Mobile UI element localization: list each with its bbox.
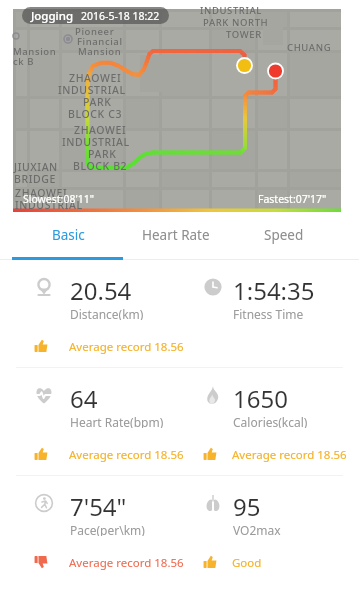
staticText: ZHAOWEI <box>15 186 68 200</box>
staticText: Mansion <box>78 45 122 58</box>
staticText: PARK NORTH <box>203 16 269 29</box>
staticText: Heart Rate <box>142 226 210 244</box>
staticText: ZHAOWEI <box>69 71 122 85</box>
staticText: BLOCK B2 <box>73 159 128 173</box>
staticText: 1:54:35 <box>233 274 315 307</box>
staticText: Distance(km) <box>70 306 144 320</box>
button[interactable]: Speed <box>230 212 338 260</box>
staticText: INDUSTRIAL <box>62 135 130 149</box>
staticText: ZHAOWEI <box>74 123 127 137</box>
staticText: BRIDGE <box>14 172 56 186</box>
staticText: Calories(kcal) <box>233 414 308 428</box>
staticText: VO2max <box>233 522 281 536</box>
staticText: Average record 18.56 <box>69 339 184 355</box>
staticText: Pioneer <box>75 25 115 38</box>
staticText: Fastest:07'17" <box>258 192 327 206</box>
staticText: Mansion <box>13 45 57 58</box>
staticText: TOWER <box>226 28 262 41</box>
staticText: 20.54 <box>70 274 132 307</box>
staticText: Average record 18.56 <box>232 447 347 463</box>
staticText: 95 <box>233 490 261 523</box>
staticText: PARK <box>88 147 117 161</box>
staticText: CHUANG <box>287 41 332 54</box>
staticText: Basic <box>52 226 85 244</box>
button[interactable]: Heart Rate <box>122 212 230 260</box>
staticText: ck B <box>13 55 35 68</box>
staticText: 7'54" <box>70 490 127 523</box>
staticText: Average record 18.56 <box>69 447 184 463</box>
button[interactable]: Basic <box>14 212 122 260</box>
staticText: Average record 18.56 <box>69 555 184 571</box>
staticText: BLOCK C3 <box>68 107 123 121</box>
staticText: Heart Rate(bpm) <box>70 414 164 428</box>
staticText: INDUSTRIAL <box>58 83 126 97</box>
staticText: Pace(per\km) <box>70 522 145 536</box>
staticText: 2016-5-18 18:22 <box>81 9 160 23</box>
staticText: Financial <box>77 35 123 48</box>
button[interactable]: Jogging <box>22 7 169 24</box>
staticText: INDUSTRIAL <box>200 4 262 17</box>
staticText: PARK <box>83 95 112 109</box>
staticText: INDUSTRIAL <box>15 198 83 212</box>
staticText: Good <box>232 555 262 571</box>
staticText: Jogging <box>31 8 74 24</box>
staticText: JIUXIAN <box>14 160 58 174</box>
staticText: Slowest:08'11" <box>23 192 95 206</box>
staticText: Fitness Time <box>233 306 304 320</box>
staticText: 1650 <box>233 382 288 415</box>
staticText: 64 <box>70 382 98 415</box>
staticText: Speed <box>264 226 304 244</box>
